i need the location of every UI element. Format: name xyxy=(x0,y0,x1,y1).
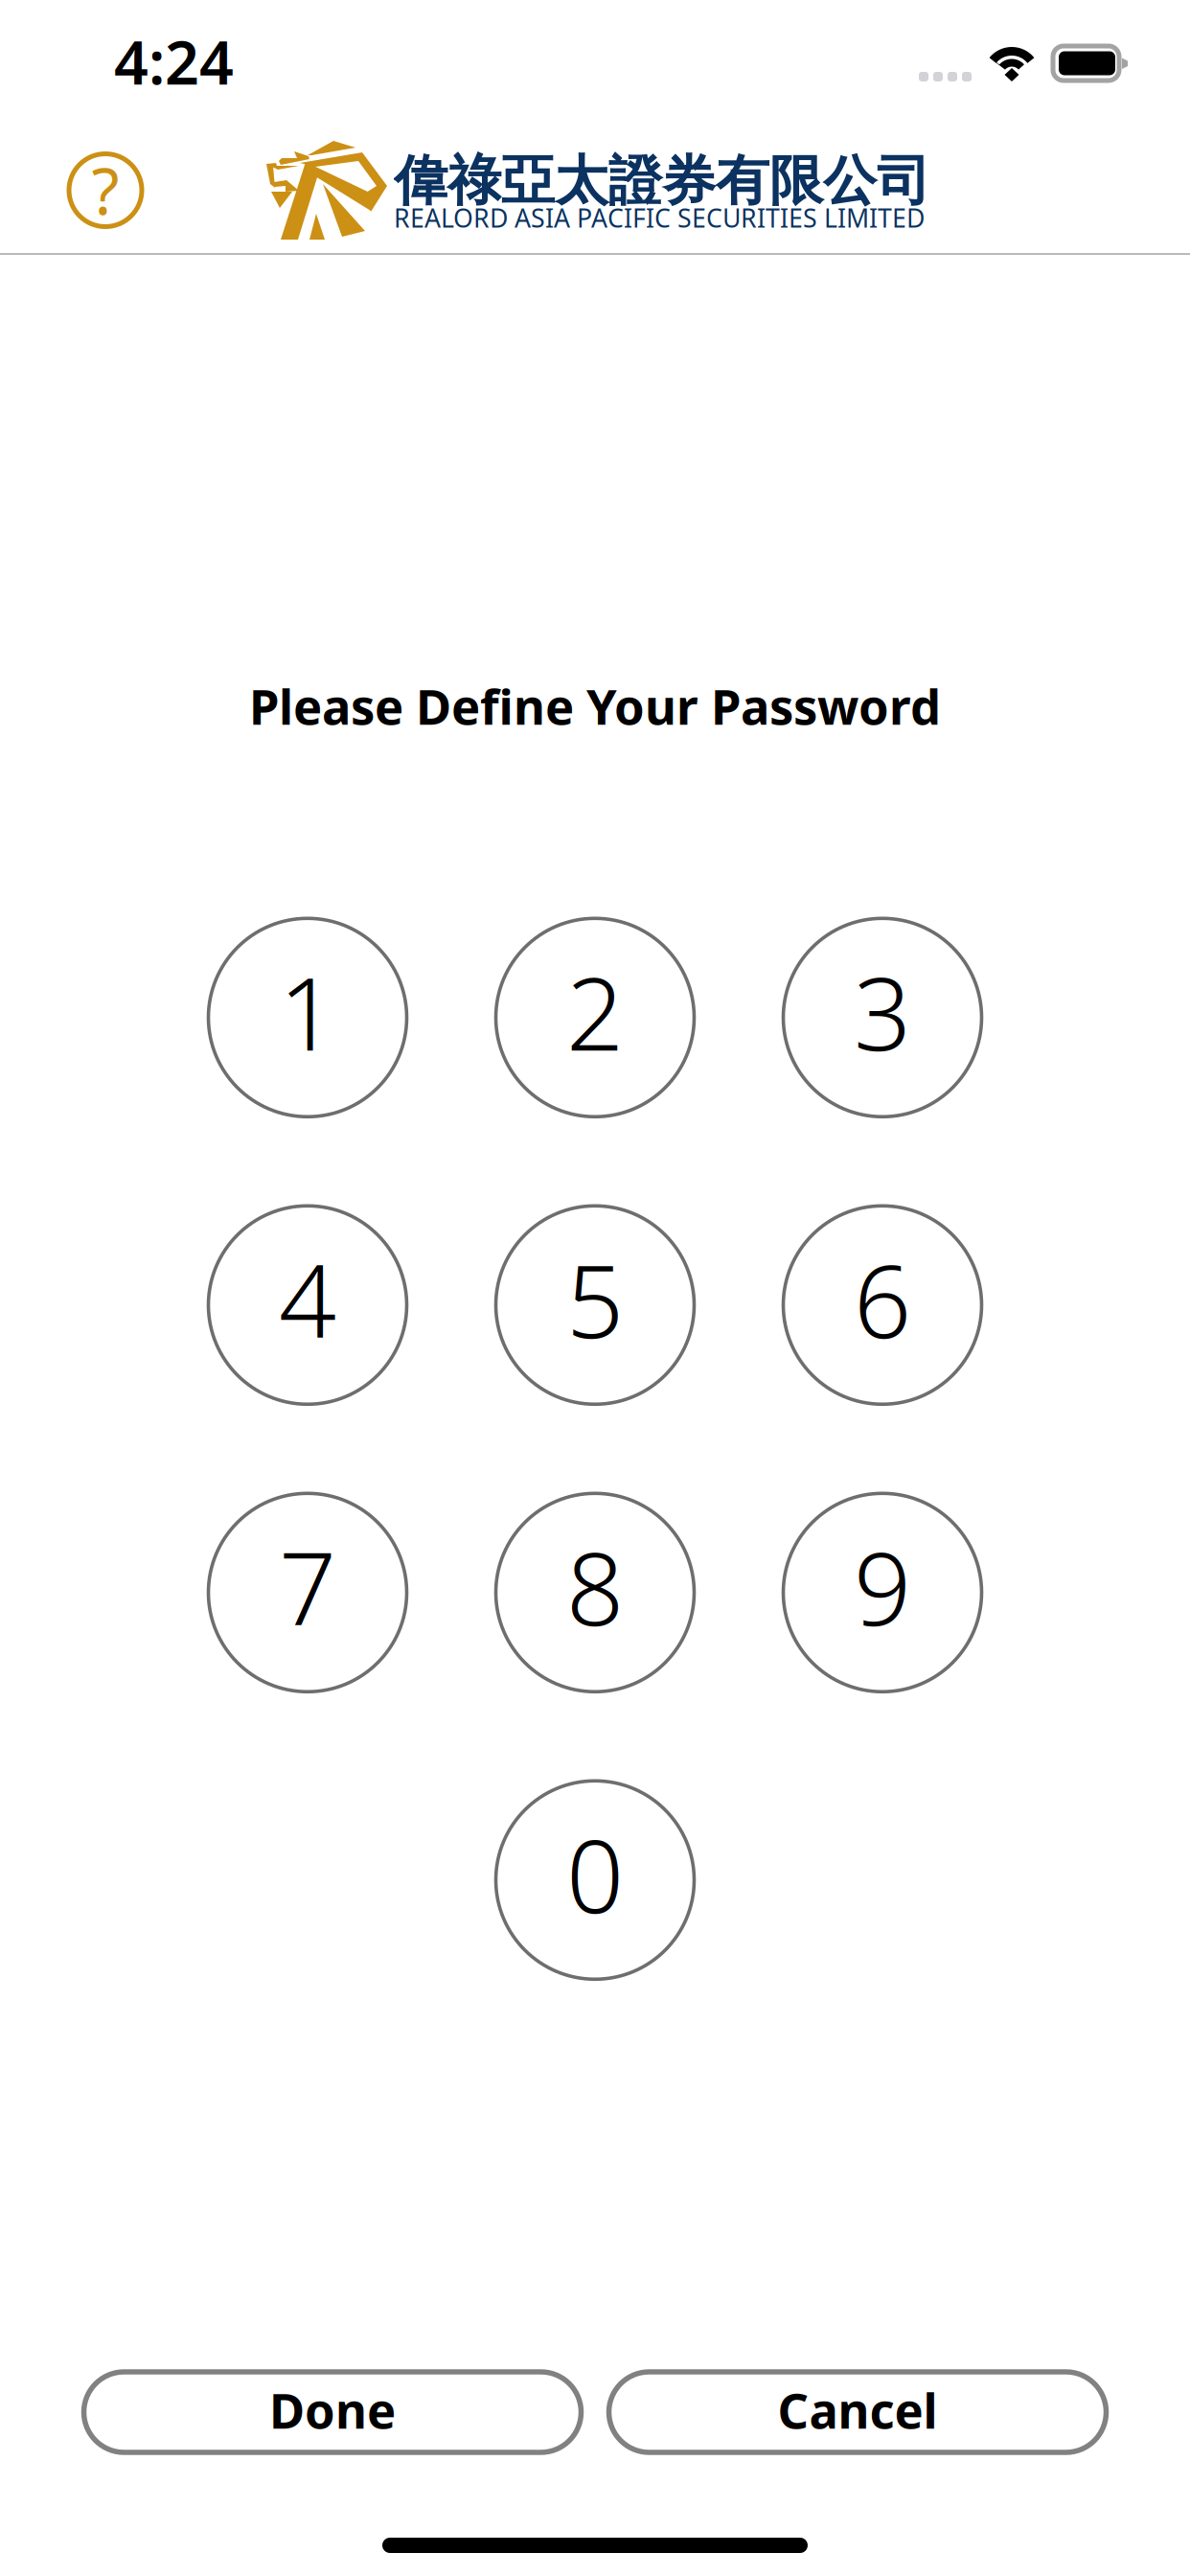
staticText: 3 xyxy=(854,944,911,1078)
button[interactable]: 4 xyxy=(208,1206,407,1404)
staticText: Done xyxy=(269,2378,396,2442)
staticText: 1 xyxy=(279,944,336,1078)
staticText: 6 xyxy=(854,1232,911,1366)
staticText: Cancel xyxy=(778,2378,938,2442)
staticText: 4 xyxy=(279,1232,336,1366)
staticText: 7 xyxy=(279,1519,336,1653)
button[interactable]: 5 xyxy=(496,1206,694,1404)
button[interactable]: 1 xyxy=(208,918,407,1117)
staticText: 2 xyxy=(566,944,624,1078)
button[interactable]: 6 xyxy=(783,1206,982,1404)
button[interactable]: 8 xyxy=(496,1493,694,1692)
staticText: ? xyxy=(92,148,119,233)
button[interactable]: Cancel xyxy=(609,2372,1106,2452)
button[interactable]: Done xyxy=(84,2372,581,2452)
button[interactable]: Help xyxy=(48,133,163,248)
button[interactable]: 3 xyxy=(783,918,982,1117)
staticText: REALORD ASIA PACIFIC SECURITIES LIMITED xyxy=(394,201,925,235)
staticText: 9 xyxy=(854,1519,911,1653)
staticText: 0 xyxy=(566,1807,624,1941)
staticText: 4:24 xyxy=(114,21,234,101)
button[interactable]: 9 xyxy=(783,1493,982,1692)
button[interactable]: 0 xyxy=(496,1781,694,1979)
staticText: 偉祿亞太證券有限公司 xyxy=(394,148,930,214)
button[interactable]: 2 xyxy=(496,918,694,1117)
button[interactable]: 7 xyxy=(208,1493,407,1692)
staticText: 8 xyxy=(566,1519,624,1653)
staticText: Please Define Your Password xyxy=(249,674,941,738)
staticText: 5 xyxy=(566,1232,624,1366)
